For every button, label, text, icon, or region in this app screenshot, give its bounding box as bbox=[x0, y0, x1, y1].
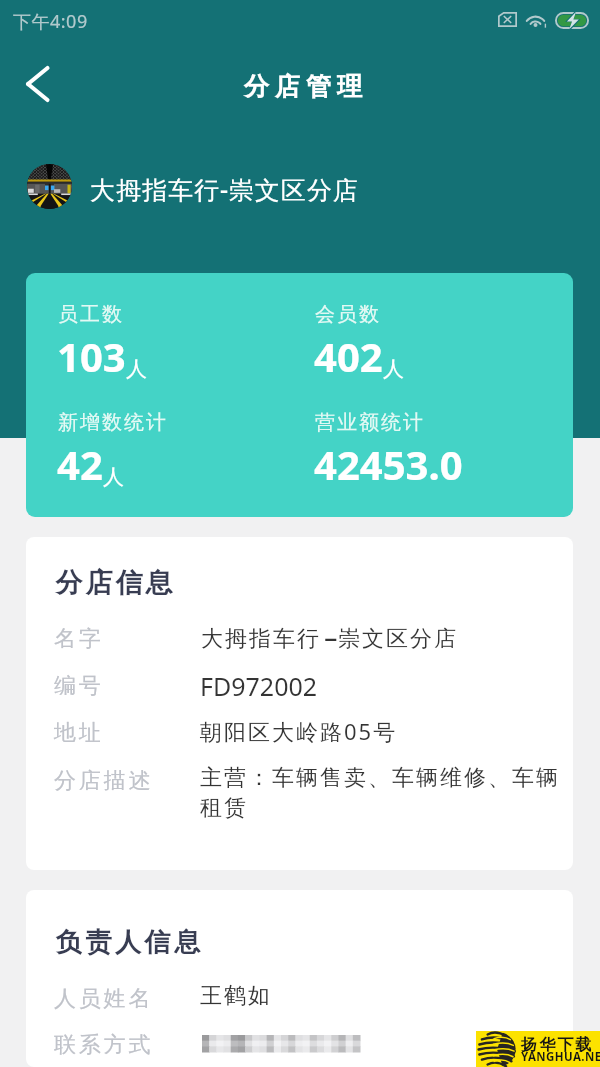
staticText: 42 bbox=[57, 437, 103, 491]
staticText: 朝阳区大岭路05号 bbox=[200, 716, 572, 746]
staticText: 大拇指车行-崇文区分店 bbox=[90, 172, 360, 206]
staticText: 地址 bbox=[54, 719, 104, 747]
staticText: 人员姓名 bbox=[54, 985, 154, 1013]
staticText: 扬华下载 bbox=[521, 1035, 594, 1055]
button[interactable]: Back bbox=[3, 58, 55, 110]
staticText: 人 bbox=[126, 356, 147, 382]
staticText: 402 bbox=[314, 329, 383, 383]
staticText: 分店信息 bbox=[54, 566, 174, 600]
staticText: 会员数 bbox=[314, 302, 380, 327]
button[interactable]: 员工数 bbox=[26, 273, 573, 517]
staticText: 大拇指车行 bbox=[200, 625, 320, 653]
staticText: 分店管理 bbox=[241, 71, 365, 102]
staticText: 人 bbox=[383, 356, 404, 382]
staticText: 名字 bbox=[54, 625, 104, 653]
staticText: 崇文区分店 bbox=[337, 625, 457, 653]
staticText: 编号 bbox=[54, 672, 104, 700]
staticText: 主营：车辆售卖、车辆维修、车辆租赁 bbox=[200, 764, 572, 822]
staticText: 103 bbox=[57, 329, 126, 383]
staticText: FD972002 bbox=[200, 669, 318, 703]
staticText: 联系方式 bbox=[54, 1031, 154, 1059]
staticText: 分店描述 bbox=[54, 767, 154, 795]
staticText: 王鹤如 bbox=[200, 982, 572, 1010]
staticText: 员工数 bbox=[57, 302, 123, 327]
staticText: 42453.0 bbox=[314, 437, 463, 491]
staticText: 人 bbox=[103, 464, 124, 490]
staticText: 营业额统计 bbox=[314, 410, 424, 435]
staticText: 负责人信息 bbox=[54, 926, 202, 959]
staticText: YANGHUA.NET bbox=[521, 1049, 600, 1065]
staticText: 新增数统计 bbox=[57, 410, 167, 435]
staticText: 下午4:09 bbox=[13, 9, 88, 34]
